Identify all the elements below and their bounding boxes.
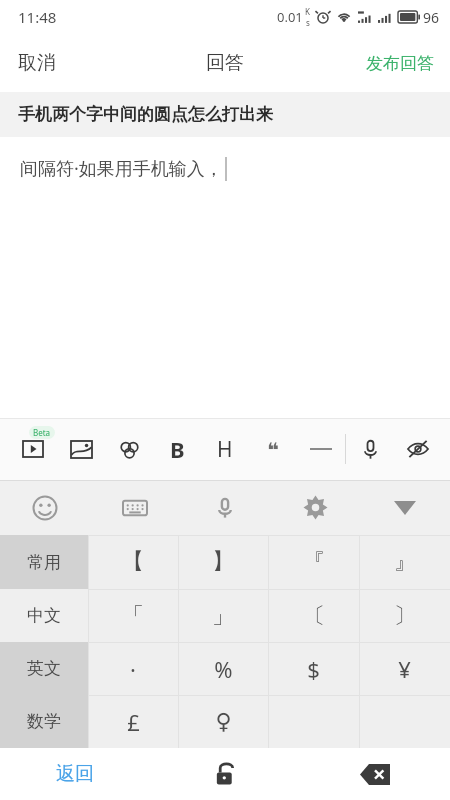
staticText: 手机两个字中间的圆点怎么打出来: [18, 104, 273, 125]
button[interactable]: Voice input: [346, 418, 394, 480]
staticText: 〔: [303, 602, 325, 630]
button[interactable]: Emoji: [0, 480, 90, 535]
button[interactable]: Voice: [180, 480, 270, 535]
staticText: $: [307, 654, 320, 684]
button[interactable]: Bold: [153, 418, 201, 480]
staticText: B: [170, 434, 185, 464]
button[interactable]: Insert video: [8, 418, 57, 480]
staticText: 』: [394, 548, 416, 576]
staticText: s: [306, 17, 310, 28]
button[interactable]: 英文: [0, 642, 88, 695]
button[interactable]: 取消: [0, 41, 74, 85]
button[interactable]: 手机两个字中间的圆点怎么打出来: [0, 92, 450, 137]
button[interactable]: Keyboard layout: [90, 480, 180, 535]
button[interactable]: 【: [88, 535, 178, 589]
button[interactable]: Divider: [297, 418, 345, 480]
button[interactable]: 数学: [0, 695, 88, 748]
button[interactable]: 发布回答: [350, 43, 450, 84]
button[interactable]: ¥: [359, 642, 450, 695]
button[interactable]: Hide keyboard: [360, 480, 450, 535]
staticText: £: [127, 707, 140, 737]
button[interactable]: Quote: [249, 418, 297, 480]
staticText: 96: [423, 8, 440, 27]
staticText: %: [214, 654, 233, 684]
button[interactable]: 中文: [0, 589, 88, 642]
staticText: 」: [212, 602, 234, 630]
button[interactable]: Delete: [300, 748, 450, 800]
button[interactable]: Insert image: [57, 418, 105, 480]
staticText: 数学: [27, 711, 61, 732]
staticText: ❝: [267, 438, 279, 461]
staticText: ♀: [215, 709, 232, 735]
staticText: 〕: [394, 602, 416, 630]
staticText: 常用: [27, 552, 61, 573]
staticText: H: [217, 435, 233, 464]
button[interactable]: %: [178, 642, 268, 695]
staticText: Beta: [33, 427, 51, 438]
button[interactable]: ♀: [178, 695, 268, 748]
staticText: 『: [303, 548, 325, 576]
button[interactable]: 〕: [359, 589, 450, 642]
staticText: 返回: [56, 762, 94, 786]
staticText: ·: [130, 654, 136, 684]
staticText: 英文: [27, 658, 61, 679]
button[interactable]: 『: [268, 535, 359, 589]
button[interactable]: 〔: [268, 589, 359, 642]
staticText: ¥: [398, 654, 411, 684]
staticText: 【: [122, 548, 144, 576]
staticText: 「: [122, 602, 144, 630]
staticText: 0.01: [277, 8, 303, 26]
button[interactable]: 】: [178, 535, 268, 589]
staticText: K: [305, 6, 310, 17]
button[interactable]: Unlock symbols: [150, 748, 300, 800]
staticText: 】: [212, 548, 234, 576]
button[interactable]: ·: [88, 642, 178, 695]
button[interactable]: Preview: [394, 418, 442, 480]
staticText: 11:48: [18, 7, 57, 27]
button[interactable]: £: [88, 695, 178, 748]
staticText: 间隔符·如果用手机输入，: [20, 156, 223, 181]
button[interactable]: 常用: [0, 535, 88, 589]
button[interactable]: Settings: [270, 480, 360, 535]
staticText: 发布回答: [366, 53, 434, 74]
button[interactable]: 』: [359, 535, 450, 589]
button[interactable]: Heading: [201, 418, 249, 480]
button[interactable]: 」: [178, 589, 268, 642]
staticText: 取消: [18, 51, 56, 75]
staticText: 回答: [206, 51, 244, 75]
button[interactable]: 返回: [0, 748, 150, 800]
staticText: 中文: [27, 605, 61, 626]
button[interactable]: $: [268, 642, 359, 695]
button[interactable]: 「: [88, 589, 178, 642]
button[interactable]: Insert sticker: [105, 418, 153, 480]
